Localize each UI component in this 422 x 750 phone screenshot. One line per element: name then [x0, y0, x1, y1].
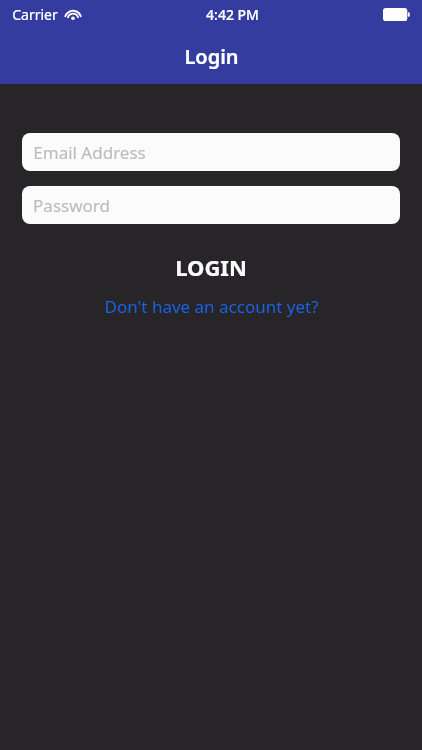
- staticText: LOGIN: [175, 252, 247, 282]
- staticText: Email Address: [33, 141, 146, 164]
- other: Wi-Fi signal: [64, 7, 82, 21]
- button[interactable]: Password: [22, 186, 400, 224]
- staticText: Don't have an account yet?: [104, 295, 319, 318]
- other: Battery full: [383, 8, 410, 21]
- staticText: 4:42 PM: [206, 5, 259, 24]
- button[interactable]: LOGIN: [0, 248, 422, 286]
- staticText: Carrier: [12, 5, 58, 24]
- staticText: Password: [33, 194, 110, 217]
- staticText: Login: [184, 43, 239, 70]
- button[interactable]: Don't have an account yet?: [0, 292, 422, 320]
- button[interactable]: Email Address: [22, 133, 400, 171]
